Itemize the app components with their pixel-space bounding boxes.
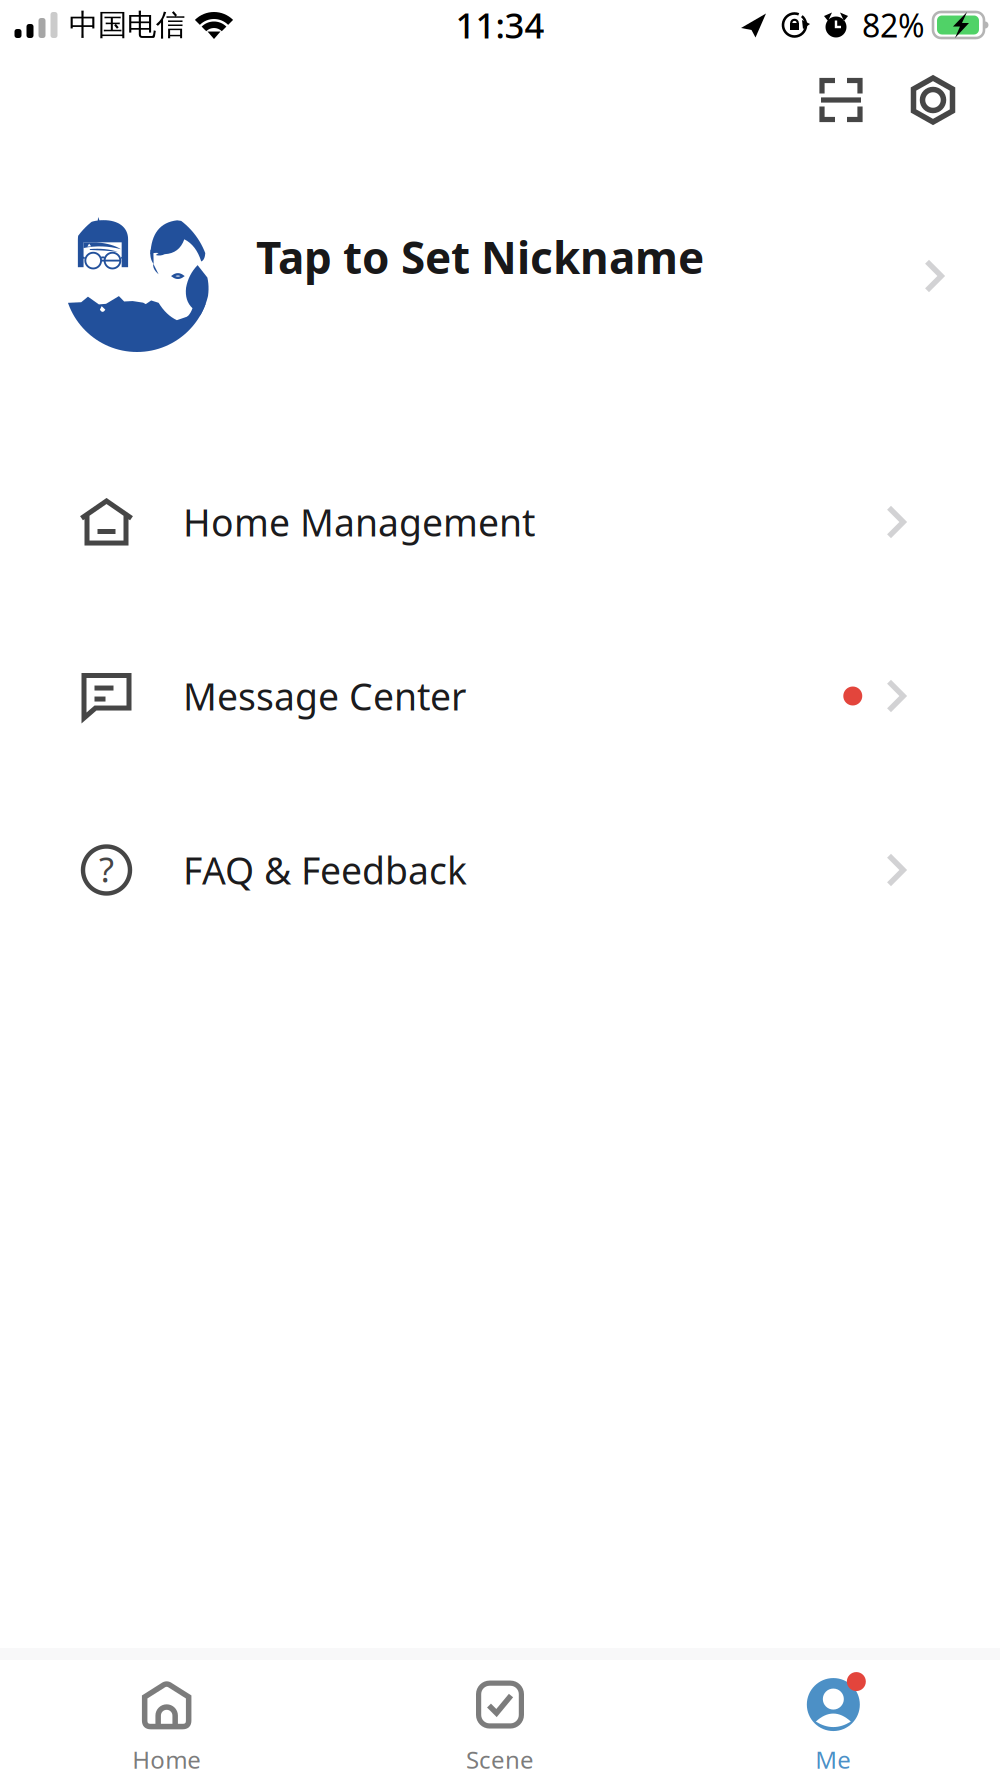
staticText: 中国电信 [69,7,185,43]
staticText: 82% [862,4,925,46]
button[interactable]: Tap to Set Nickname [0,167,1000,347]
button[interactable]: Scene [333,1661,667,1777]
staticText: ? [99,846,114,892]
button[interactable]: Me [667,1661,1000,1777]
staticText: Tap to Set Nickname [256,228,704,286]
staticText: Home Management [183,497,535,547]
button[interactable]: Settings [889,57,977,143]
staticText: Me [815,1744,851,1775]
button[interactable]: Scan QR code [793,57,889,143]
staticText: FAQ & Feedback [183,845,467,895]
staticText: Message Center [183,671,466,721]
button[interactable]: Home [0,1661,333,1777]
button[interactable]: Message Center [0,609,1000,783]
staticText: 11:34 [455,2,544,48]
staticText: Home [132,1744,201,1775]
button[interactable]: ? [0,783,1000,957]
staticText: Scene [466,1744,534,1775]
button[interactable]: Home Management [0,435,1000,609]
